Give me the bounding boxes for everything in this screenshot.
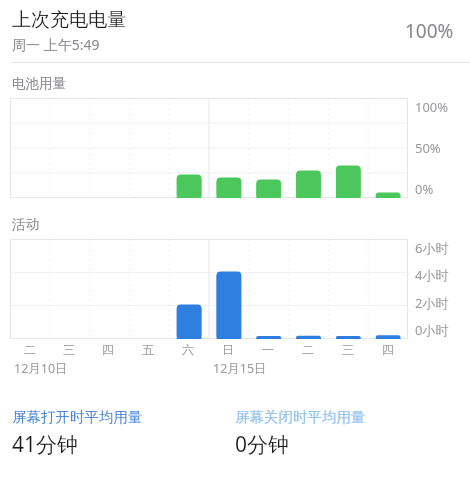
staticText: 活动 [12,216,39,233]
staticText: 周一 上午5:49 [12,35,100,54]
staticText: 三 [63,342,75,357]
staticText: 100% [415,98,449,116]
staticText: 上次充电电量 [12,8,126,32]
staticText: 2小时 [415,294,449,312]
staticText: 12月10日 [14,360,68,377]
button[interactable] [10,239,408,339]
staticText: 12月15日 [213,360,267,377]
staticText: 一 [262,342,274,357]
staticText: 三 [342,342,354,357]
staticText: 0小时 [415,321,449,339]
button[interactable]: 屏幕关闭时平均用量 [235,408,458,459]
staticText: 6小时 [415,239,449,257]
staticText: 五 [142,342,154,357]
staticText: 二 [24,342,36,357]
staticText: 屏幕关闭时平均用量 [235,408,366,426]
staticText: 四 [382,342,394,357]
staticText: 50% [415,139,441,157]
button[interactable]: 上次充电电量 [0,0,470,62]
staticText: 电池用量 [12,75,66,92]
staticText: 0分钟 [235,430,290,459]
staticText: 0% [415,180,434,198]
staticText: 日 [222,342,234,357]
button[interactable] [10,98,408,198]
staticText: 4小时 [415,266,449,284]
staticText: 100% [405,18,454,44]
button[interactable]: 屏幕打开时平均用量 [12,408,235,459]
staticText: 六 [182,342,194,357]
staticText: 四 [102,342,114,357]
staticText: 二 [302,342,314,357]
staticText: 41分钟 [12,430,79,459]
staticText: 屏幕打开时平均用量 [12,408,143,426]
